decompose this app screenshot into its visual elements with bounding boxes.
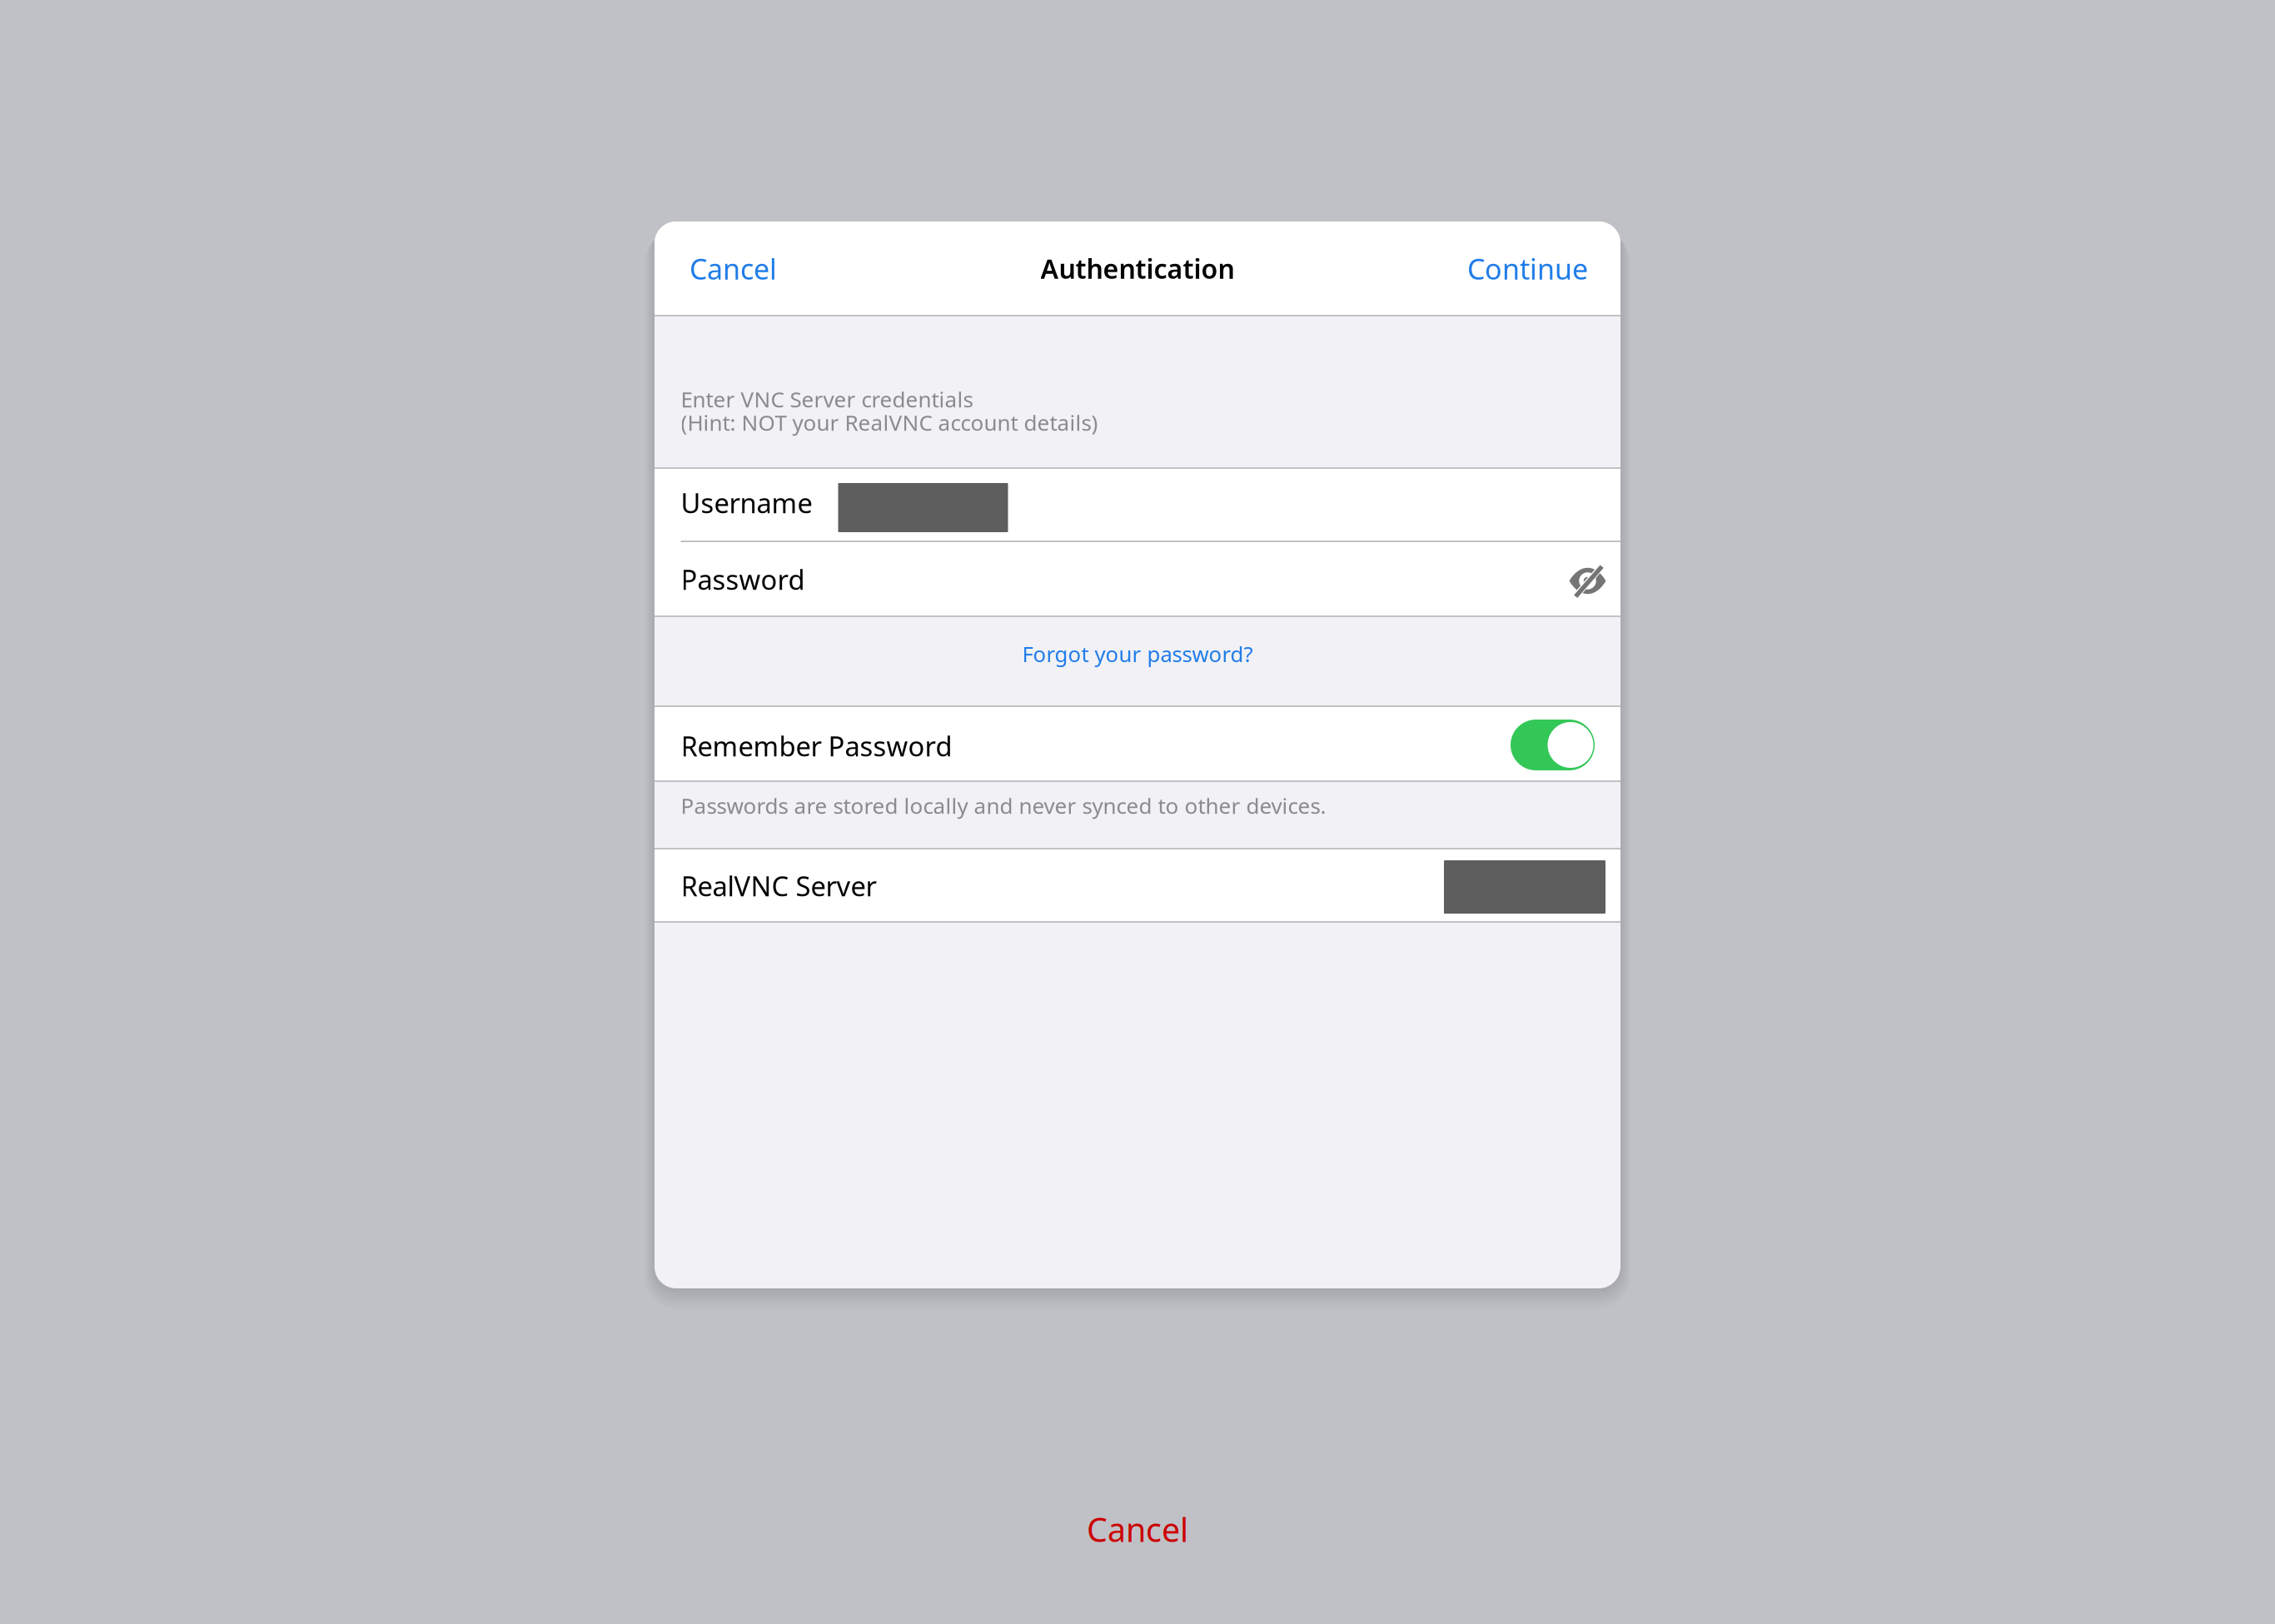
staticText: Authentication xyxy=(1040,251,1235,286)
staticText: RealVNC Server xyxy=(681,868,876,904)
staticText: Password xyxy=(681,561,805,597)
button[interactable]: Continue xyxy=(1467,222,1588,286)
staticText: Continue xyxy=(1467,250,1588,287)
staticText: Remember Password xyxy=(681,728,952,764)
button[interactable]: Cancel xyxy=(689,222,777,286)
button[interactable]: Cancel xyxy=(655,1507,1620,1551)
button[interactable]: Show password xyxy=(1569,542,1606,599)
button[interactable]: Remember Password xyxy=(1511,707,1595,770)
staticText: Forgot your password? xyxy=(1022,640,1253,668)
staticText: Passwords are stored locally and never s… xyxy=(681,791,1326,820)
button[interactable]: Forgot your password? xyxy=(655,617,1620,705)
staticText: Cancel xyxy=(689,250,777,287)
staticText: Enter VNC Server credentials xyxy=(681,385,973,413)
staticText: Username xyxy=(681,485,812,521)
button[interactable]: RealVNC Server xyxy=(655,849,1620,921)
staticText: Cancel xyxy=(1087,1507,1188,1551)
button[interactable]: Username xyxy=(655,469,1620,541)
staticText: (Hint: NOT your RealVNC account details) xyxy=(681,408,1098,437)
